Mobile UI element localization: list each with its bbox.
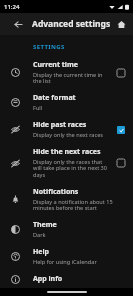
staticText: Hide the next races [33, 147, 101, 157]
staticText: Date format [33, 93, 76, 103]
staticText: Display a notification about 15 minutes … [33, 198, 127, 212]
staticText: Theme [33, 220, 57, 230]
staticText: App info [33, 274, 63, 284]
button[interactable]: Theme [0, 216, 133, 243]
button[interactable]: Home [113, 16, 129, 32]
staticText: Display the current time in the list [33, 71, 111, 85]
button[interactable]: Unchecked [115, 67, 127, 79]
button[interactable]: Hide the next races [0, 143, 133, 183]
staticText: Display only the races that will take pl… [33, 158, 111, 179]
button[interactable]: Help [0, 243, 133, 270]
button[interactable]: Back [10, 16, 26, 32]
staticText: Full [33, 104, 43, 112]
staticText: Current time [33, 60, 78, 70]
staticText: Hide past races [33, 120, 87, 130]
button[interactable]: Checked [115, 124, 127, 136]
staticText: Dark [33, 231, 46, 239]
button[interactable]: Current time [0, 56, 133, 89]
button[interactable]: App info [0, 270, 133, 288]
staticText: SETTINGS [33, 43, 65, 51]
staticText: 11:24 [4, 3, 20, 11]
staticText: Display only the next races [33, 131, 104, 139]
button[interactable]: Hide past races [0, 116, 133, 143]
button[interactable]: Notifications [0, 183, 133, 216]
button[interactable]: Unchecked [115, 157, 127, 169]
staticText: Notifications [33, 187, 79, 197]
staticText: Help [33, 247, 50, 257]
staticText: Advanced settings [32, 18, 111, 30]
button[interactable]: Date format [0, 89, 133, 116]
staticText: Help for using iCalendar [33, 258, 97, 266]
